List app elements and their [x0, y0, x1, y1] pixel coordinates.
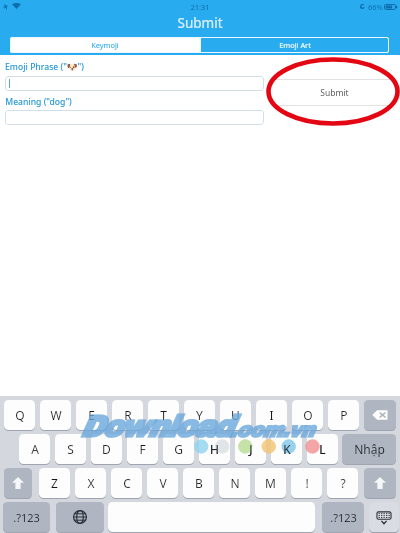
staticText: M: [265, 475, 276, 491]
button[interactable]: Nhập: [342, 434, 396, 464]
staticText: 21:31: [190, 2, 210, 12]
button[interactable]: S: [55, 434, 86, 464]
staticText: !: [305, 475, 309, 491]
button[interactable]: M: [255, 468, 286, 498]
button[interactable]: Y: [184, 400, 215, 430]
button[interactable]: N: [219, 468, 250, 498]
button[interactable]: W: [40, 400, 71, 430]
staticText: H: [210, 441, 219, 457]
button[interactable]: Z: [39, 468, 70, 498]
staticText: A: [31, 441, 39, 457]
staticText: .?123: [13, 510, 40, 525]
button[interactable]: D: [91, 434, 122, 464]
button[interactable]: U: [220, 400, 251, 430]
staticText: Submit: [177, 14, 223, 32]
staticText: L: [319, 441, 326, 457]
button[interactable]: Q: [4, 400, 35, 430]
staticText: S: [67, 441, 74, 457]
staticText: U: [231, 407, 240, 423]
staticText: .com.vn: [229, 419, 313, 441]
staticText: Emoji Art: [279, 40, 311, 50]
button[interactable]: Hide keyboard: [369, 502, 399, 532]
button[interactable]: Change keyboard language: [56, 502, 104, 532]
button[interactable]: V: [147, 468, 178, 498]
button[interactable]: H: [199, 434, 230, 464]
staticText: Download: [79, 411, 231, 444]
staticText: J: [249, 441, 253, 457]
staticText: G: [174, 441, 183, 457]
button[interactable]: Submit: [274, 79, 394, 106]
button[interactable]: C: [111, 468, 142, 498]
button[interactable]: G: [163, 434, 194, 464]
button[interactable]: P: [328, 400, 359, 430]
staticText: H: [210, 441, 219, 457]
staticText: B: [195, 475, 203, 491]
staticText: L: [319, 441, 326, 457]
staticText: Z: [51, 475, 58, 491]
button[interactable]: Keymoji: [10, 37, 200, 53]
staticText: F: [139, 441, 146, 457]
button[interactable]: K: [271, 434, 302, 464]
staticText: W: [50, 407, 62, 423]
button[interactable]: B: [183, 468, 214, 498]
button[interactable]: L: [307, 434, 338, 464]
staticText: 66%: [368, 2, 383, 12]
staticText: D: [102, 441, 111, 457]
staticText: Keymoji: [91, 40, 119, 50]
staticText: N: [230, 475, 240, 491]
staticText: Q: [15, 407, 25, 423]
staticText: K: [283, 441, 291, 457]
button[interactable]: I: [256, 400, 287, 430]
staticText: .?123: [330, 510, 357, 525]
staticText: I: [269, 407, 274, 423]
staticText: R: [124, 407, 132, 423]
button[interactable]: Emoji Art: [201, 38, 388, 52]
button[interactable]: ?: [327, 468, 358, 498]
staticText: Y: [196, 407, 203, 423]
button[interactable]: .?123: [3, 502, 50, 532]
button[interactable]: [5, 76, 264, 91]
button[interactable]: !: [291, 468, 322, 498]
staticText: ?: [340, 475, 346, 491]
button[interactable]: Delete: [364, 400, 396, 430]
staticText: Nhập: [354, 441, 385, 457]
button[interactable]: O: [292, 400, 323, 430]
button[interactable]: R: [112, 400, 143, 430]
button[interactable]: F: [127, 434, 158, 464]
staticText: Emoji Phrase ("🐶"): [5, 61, 84, 73]
button[interactable]: J: [235, 434, 266, 464]
staticText: Submit: [320, 87, 349, 99]
staticText: C: [123, 475, 131, 491]
staticText: O: [303, 407, 313, 423]
button[interactable]: .?123: [322, 502, 364, 532]
staticText: J: [249, 441, 253, 457]
staticText: P: [340, 407, 348, 423]
button[interactable]: Shift: [4, 468, 32, 498]
staticText: K: [283, 441, 291, 457]
button[interactable]: T: [148, 400, 179, 430]
button[interactable]: Shift: [364, 468, 396, 498]
button[interactable]: X: [75, 468, 106, 498]
staticText: Meaning ("dog"): [5, 96, 72, 108]
button[interactable]: E: [76, 400, 107, 430]
staticText: V: [159, 475, 167, 491]
staticText: E: [88, 407, 95, 423]
staticText: X: [87, 475, 95, 491]
staticText: T: [160, 407, 167, 423]
button[interactable]: [5, 110, 264, 125]
button[interactable]: A: [19, 434, 50, 464]
